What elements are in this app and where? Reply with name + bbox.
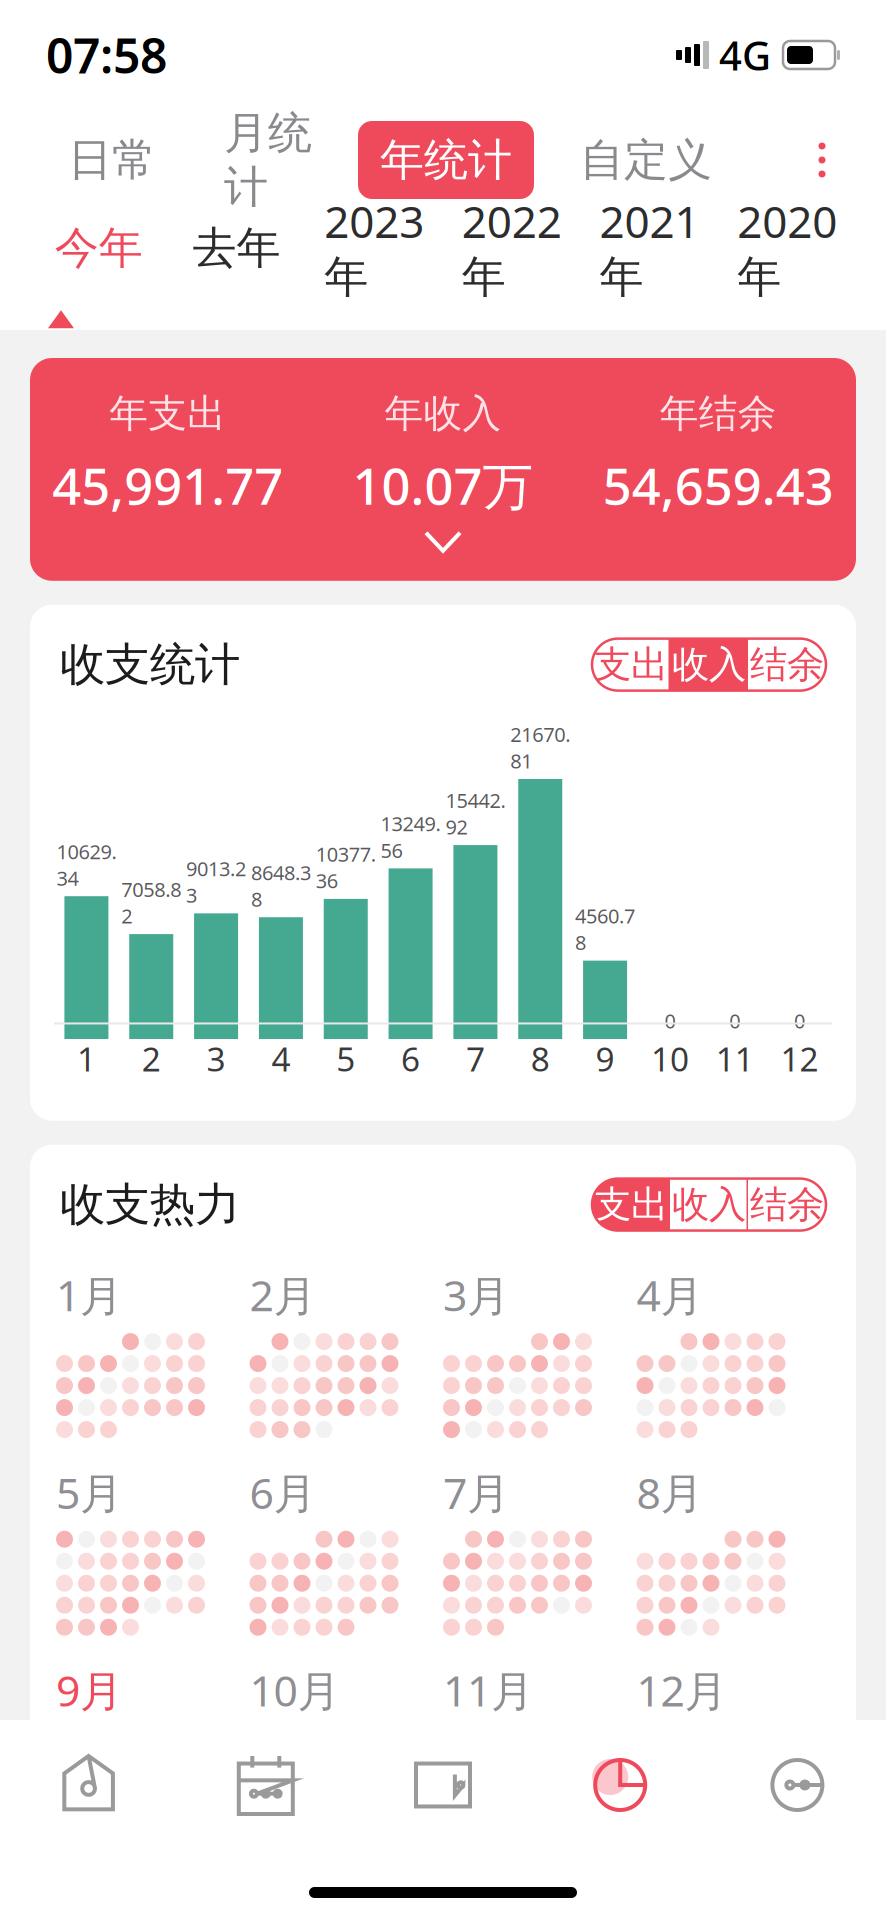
staticText: 10377.36 (316, 841, 376, 894)
staticText: 15442.92 (445, 787, 505, 840)
staticText: 9月 (56, 1662, 123, 1718)
button[interactable]: 支出 (592, 639, 670, 691)
staticText: 2021年 (599, 192, 699, 304)
staticText: 11 (716, 1036, 754, 1081)
staticText: 2月 (249, 1266, 316, 1323)
staticText: 1 (77, 1036, 96, 1081)
staticText: 4560.78 (575, 902, 635, 956)
button[interactable]: 今年 (30, 221, 168, 275)
staticText: 2023年 (324, 192, 424, 304)
staticText: 9 (596, 1036, 615, 1081)
staticText: 1月 (56, 1266, 123, 1323)
button[interactable]: 结余 (748, 639, 826, 691)
button[interactable]: Wallet (354, 1720, 532, 1850)
staticText: 0 (794, 1007, 805, 1034)
button[interactable]: 2020年 (718, 192, 856, 304)
button[interactable]: Home (0, 1720, 177, 1850)
staticText: 结余 (750, 1182, 824, 1227)
button[interactable]: 自定义 (546, 121, 746, 199)
staticText: 10.07万 (352, 451, 533, 519)
staticText: 7058.82 (121, 876, 181, 929)
staticText: 2022年 (462, 192, 562, 304)
button[interactable]: 2022年 (443, 192, 581, 304)
staticText: 3 (207, 1036, 226, 1081)
staticText: 12 (781, 1036, 819, 1081)
button[interactable]: Calendar (177, 1720, 354, 1850)
staticText: 0 (729, 1007, 740, 1034)
staticText: 9013.23 (186, 855, 246, 908)
staticText: 支出 (594, 1182, 668, 1227)
button[interactable]: Expand summary (30, 519, 856, 565)
button[interactable]: 结余 (748, 1179, 826, 1231)
button[interactable]: More (709, 1720, 886, 1850)
staticText: 0 (664, 1007, 675, 1034)
staticText: 4月 (636, 1266, 703, 1323)
button[interactable]: 收入 (670, 1179, 748, 1231)
staticText: 去年 (192, 221, 280, 275)
staticText: 8648.38 (251, 859, 311, 912)
staticText: 2020年 (737, 192, 837, 304)
staticText: 21670.81 (510, 721, 570, 774)
staticText: 今年 (55, 221, 143, 275)
staticText: 日常 (68, 133, 156, 187)
staticText: 7 (466, 1036, 485, 1081)
staticText: 3月 (443, 1266, 510, 1323)
button[interactable]: 2023年 (305, 192, 443, 304)
staticText: 8月 (636, 1464, 703, 1521)
staticText: 45,991.77 (52, 451, 283, 519)
staticText: 6月 (249, 1464, 316, 1521)
staticText: 年统计 (380, 133, 512, 187)
button[interactable]: 年统计 (346, 121, 546, 199)
staticText: 10 (651, 1036, 689, 1081)
button[interactable]: More options (792, 120, 852, 200)
button[interactable]: 月统计 (190, 94, 346, 226)
staticText: 收支热力 (60, 1177, 240, 1232)
staticText: 6 (401, 1036, 420, 1081)
staticText: 4 (271, 1036, 290, 1081)
staticText: 11月 (443, 1662, 534, 1718)
staticText: 12月 (636, 1662, 727, 1718)
staticText: 5 (336, 1036, 355, 1081)
staticText: 7月 (443, 1464, 510, 1521)
staticText: 年收入 (384, 390, 501, 437)
staticText: 年支出 (109, 390, 226, 437)
staticText: 13249.56 (381, 810, 441, 863)
staticText: 年结余 (660, 390, 777, 437)
staticText: 2 (142, 1036, 161, 1081)
button[interactable]: 去年 (168, 221, 305, 275)
staticText: 4G (719, 28, 771, 81)
staticText: 收入 (672, 1182, 746, 1227)
staticText: 结余 (750, 642, 824, 688)
button[interactable]: 收入 (670, 639, 748, 691)
button[interactable]: 2021年 (581, 192, 718, 304)
staticText: 8 (531, 1036, 550, 1081)
staticText: 5月 (56, 1464, 123, 1521)
button[interactable]: 支出 (592, 1179, 670, 1231)
staticText: 10月 (249, 1662, 340, 1718)
button[interactable]: 日常 (34, 121, 190, 199)
staticText: 07:58 (46, 23, 167, 87)
staticText: 自定义 (580, 133, 712, 187)
staticText: 支出 (594, 642, 668, 688)
staticText: 收支统计 (60, 637, 240, 692)
staticText: 月统计 (224, 106, 312, 214)
button[interactable]: Statistics (532, 1720, 709, 1850)
staticText: 54,659.43 (603, 451, 834, 519)
staticText: 10629.34 (56, 838, 116, 891)
staticText: 收入 (672, 642, 746, 688)
